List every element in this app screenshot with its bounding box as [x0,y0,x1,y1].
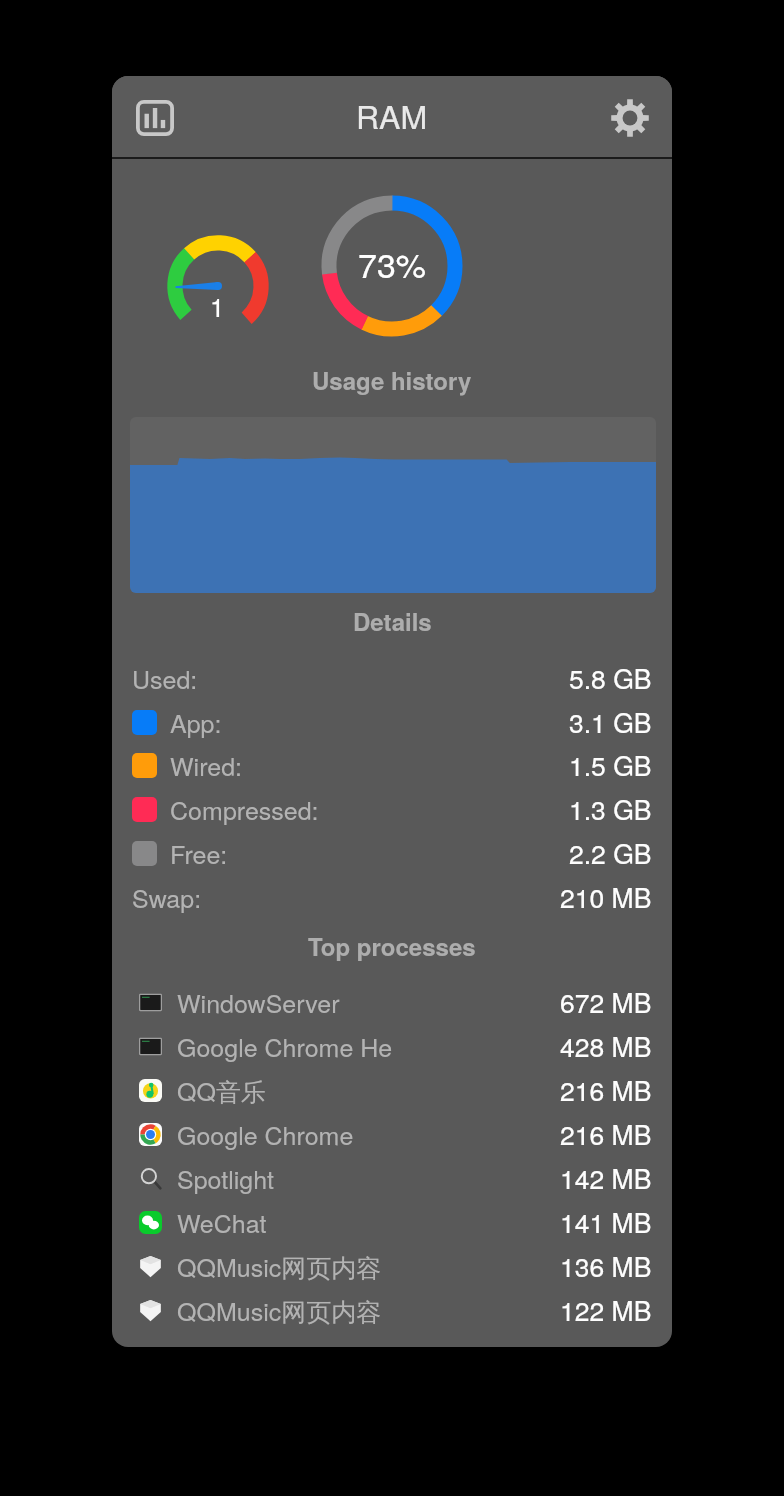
staticText: 2.2 GB [569,834,652,872]
staticText: 216 MB [560,1115,652,1153]
staticText: QQMusic网页内容 [177,1292,382,1328]
staticText: RAM [356,92,428,138]
button[interactable]: Wired: [112,743,672,787]
button[interactable]: WeChat [112,1200,672,1244]
staticText: 73% [358,239,427,288]
staticText: Wired: [170,747,242,783]
staticText: 5.8 GB [569,659,652,697]
staticText: 1 [210,287,225,324]
staticText: Details [353,604,432,638]
staticText: WeChat [177,1204,267,1240]
button[interactable]: QQ音乐 [112,1068,672,1112]
staticText: Used: [132,660,198,696]
button[interactable]: Settings [604,92,656,144]
button[interactable]: WindowServer [112,980,672,1024]
staticText: 1.5 GB [569,746,652,784]
button[interactable]: Free: [112,831,672,875]
staticText: 210 MB [560,878,652,916]
button[interactable]: Spotlight [112,1156,672,1200]
button[interactable]: Used: [112,656,672,700]
staticText: 672 MB [560,983,652,1021]
staticText: 3.1 GB [569,703,652,741]
button[interactable]: App: [112,700,672,744]
staticText: 136 MB [560,1247,652,1285]
staticText: 428 MB [560,1027,652,1065]
staticText: App: [170,704,222,740]
staticText: QQ音乐 [177,1072,266,1108]
staticText: WindowServer [177,984,340,1020]
staticText: Google Chrome He [177,1028,393,1064]
staticText: Google Chrome [177,1116,354,1152]
staticText: Top processes [308,929,476,963]
staticText: Swap: [132,879,202,915]
staticText: 141 MB [560,1203,652,1241]
button[interactable]: Statistics [128,91,182,145]
staticText: 216 MB [560,1071,652,1109]
button[interactable]: Google Chrome He [112,1024,672,1068]
staticText: Usage history [312,363,472,397]
button[interactable]: QQMusic网页内容 [112,1244,672,1288]
staticText: 142 MB [560,1159,652,1197]
staticText: 122 MB [560,1291,652,1329]
staticText: Compressed: [170,791,319,827]
button[interactable]: Compressed: [112,787,672,831]
staticText: Free: [170,835,228,871]
staticText: Spotlight [177,1160,275,1196]
button[interactable]: Swap: [112,875,672,919]
staticText: QQMusic网页内容 [177,1248,382,1284]
button[interactable]: Google Chrome [112,1112,672,1156]
staticText: 1.3 GB [569,790,652,828]
button[interactable]: QQMusic网页内容 [112,1288,672,1332]
